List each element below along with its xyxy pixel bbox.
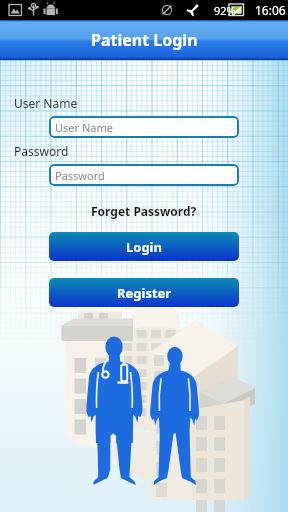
- staticText: User Name: [55, 120, 113, 135]
- staticText: Forget Password?: [91, 203, 197, 219]
- button[interactable]: Register: [49, 278, 239, 307]
- staticText: Password: [14, 143, 69, 159]
- staticText: Login: [126, 238, 162, 256]
- button[interactable]: Forget Password?: [87, 201, 201, 221]
- staticText: User Name: [14, 95, 78, 111]
- button[interactable]: Login: [49, 232, 239, 261]
- staticText: Password: [55, 168, 105, 183]
- button[interactable]: User Name: [49, 116, 239, 138]
- button[interactable]: Password: [49, 164, 239, 186]
- staticText: Patient Login: [91, 29, 198, 51]
- staticText: 16:06: [255, 2, 286, 18]
- staticText: 92%: [214, 3, 236, 18]
- staticText: Register: [117, 284, 172, 302]
